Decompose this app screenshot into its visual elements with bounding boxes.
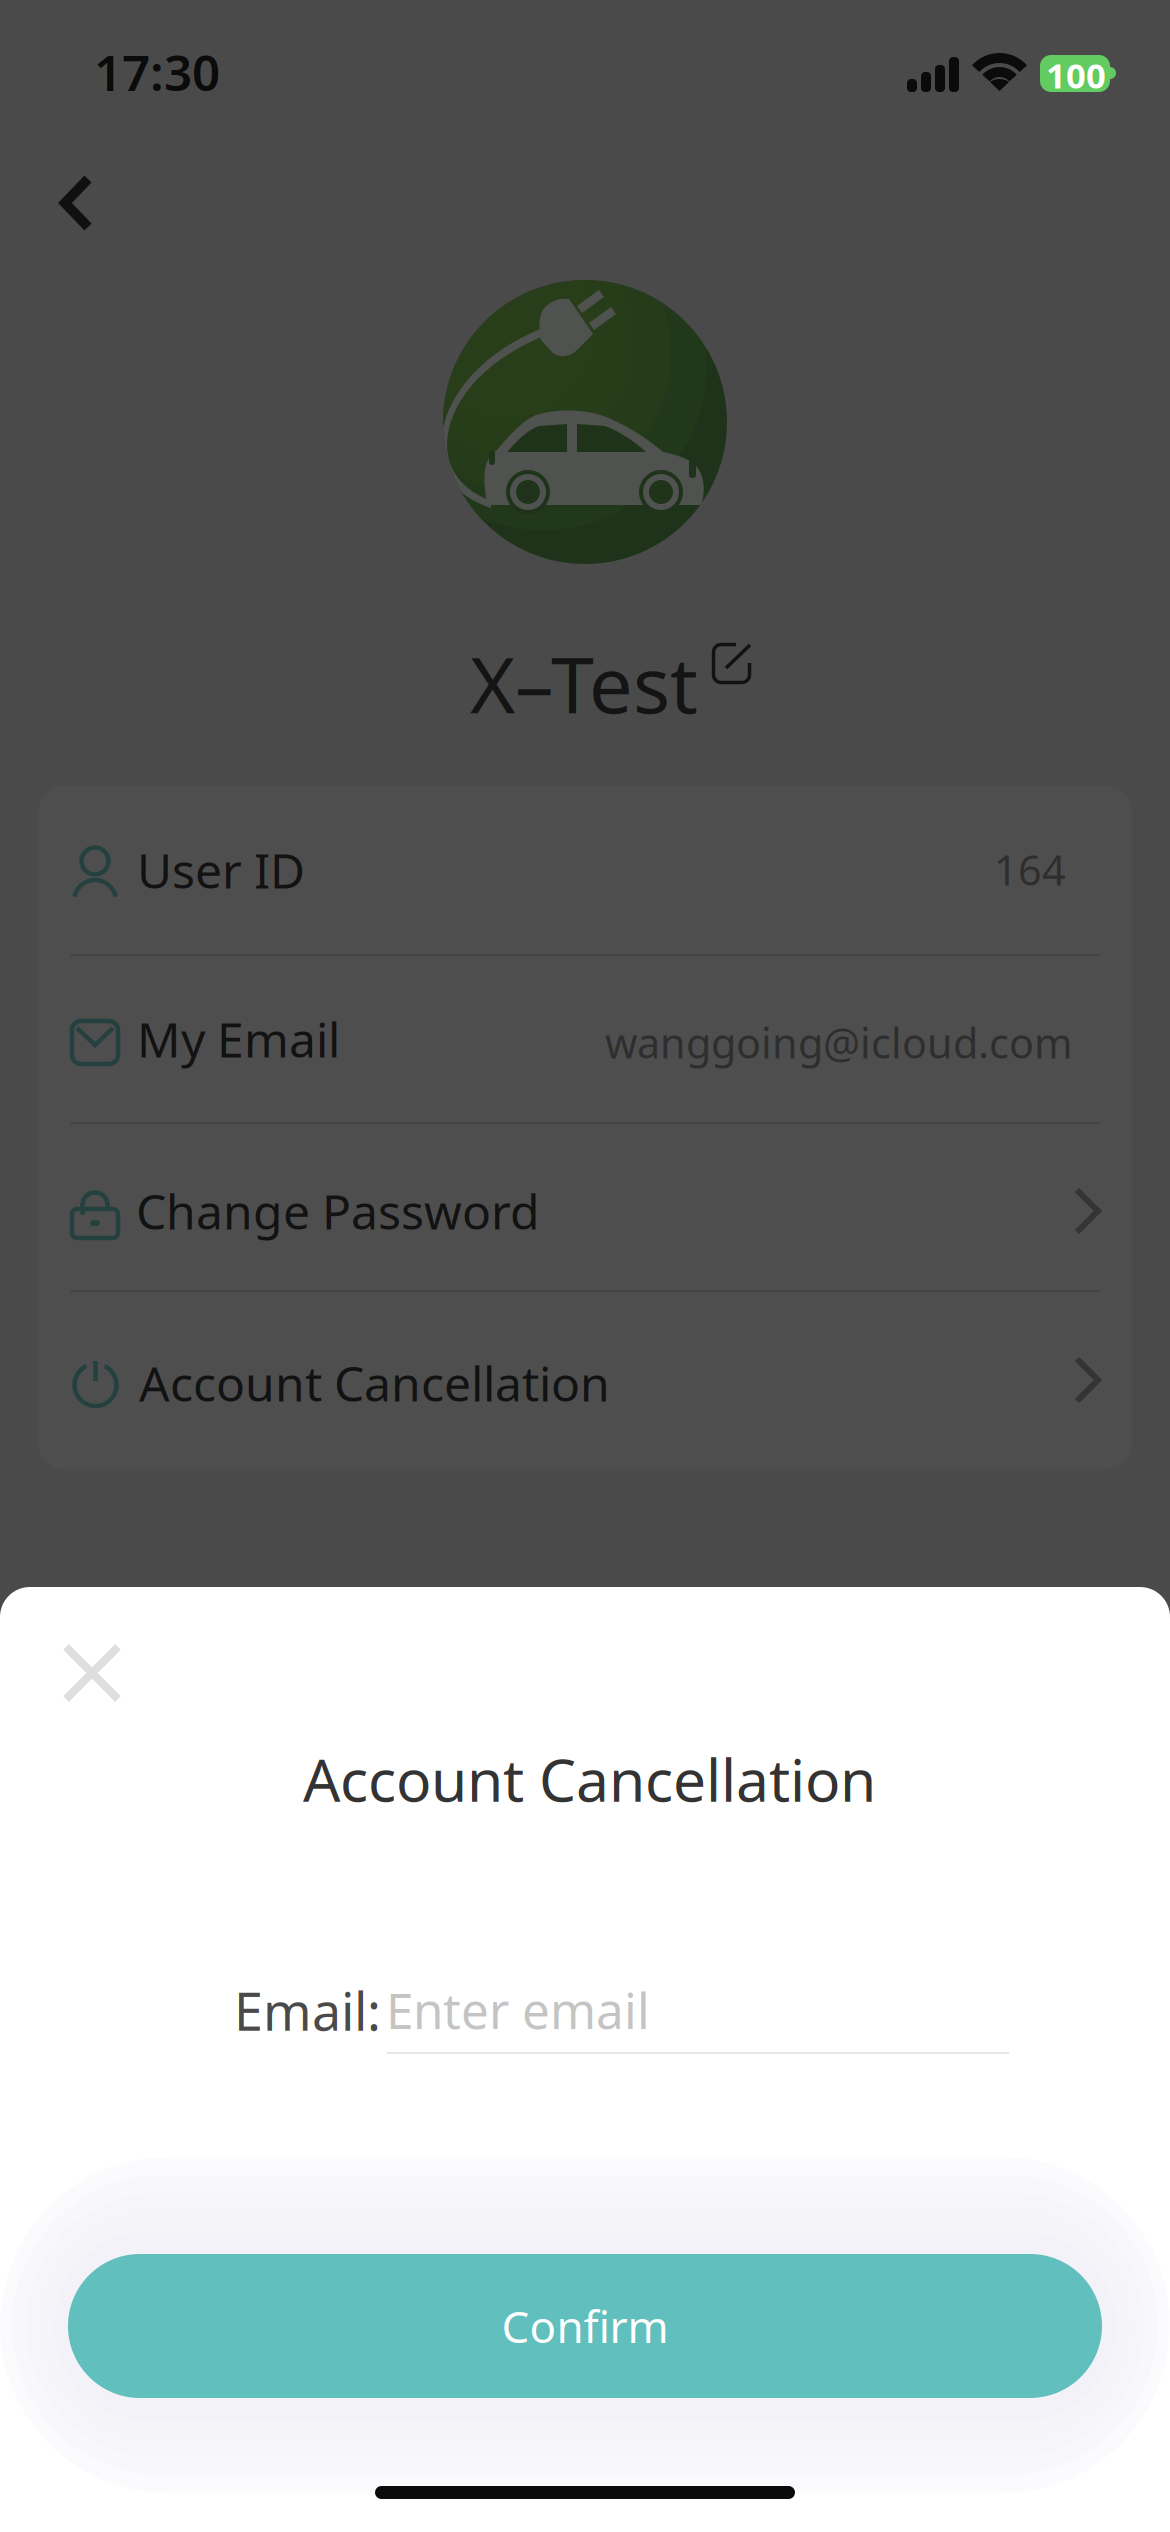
staticText: 17:30 <box>94 39 220 104</box>
staticText: Enter email <box>386 1977 650 2042</box>
button[interactable]: Edit name <box>711 642 752 685</box>
button[interactable]: Back <box>38 158 116 248</box>
staticText: My Email <box>137 1007 340 1071</box>
staticText: User ID <box>137 838 305 902</box>
staticText: wanggoing@icloud.com <box>605 1015 1073 1070</box>
staticText: Confirm <box>501 2297 668 2355</box>
button[interactable]: Confirm <box>68 2254 1102 2398</box>
staticText: Change Password <box>136 1179 540 1243</box>
staticText: 100 <box>1046 52 1106 98</box>
staticText: X–Test <box>470 632 698 735</box>
staticText: Account Cancellation <box>139 1351 610 1415</box>
staticText: 164 <box>994 842 1066 897</box>
button[interactable]: Close <box>34 1615 150 1731</box>
staticText: Account Cancellation <box>303 1740 876 1818</box>
staticText: Email: <box>234 1976 381 2045</box>
